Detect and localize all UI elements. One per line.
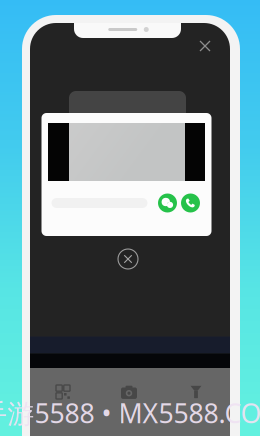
staticText: 手游5588 • MX5588.COM [0, 395, 260, 431]
button[interactable]: Call [181, 193, 200, 212]
button[interactable]: Camera [96, 368, 162, 436]
button[interactable]: Flashlight [162, 368, 230, 436]
button[interactable]: Close [191, 32, 219, 60]
button[interactable]: Share to WeChat [158, 193, 177, 212]
button[interactable]: Dismiss [114, 245, 142, 273]
button[interactable]: Scan QR code [30, 368, 96, 436]
